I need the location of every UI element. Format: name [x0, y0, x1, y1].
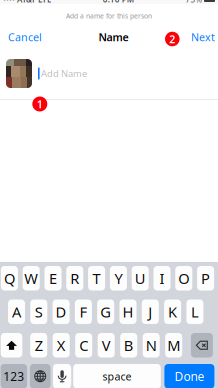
button[interactable]: V: [98, 333, 115, 357]
button[interactable]: H: [119, 299, 136, 324]
staticText: O: [178, 268, 189, 288]
staticText: 2: [169, 32, 175, 46]
button[interactable]: Z: [30, 333, 47, 357]
button[interactable]: J: [142, 299, 159, 324]
button[interactable]: P: [197, 266, 214, 290]
staticText: C: [79, 335, 88, 355]
staticText: Add a name for this person: [66, 12, 152, 20]
staticText: Name: [98, 30, 128, 44]
button[interactable]: G: [97, 299, 114, 324]
staticText: B: [124, 335, 134, 355]
button[interactable]: space: [73, 364, 161, 388]
staticText: S: [35, 302, 43, 321]
staticText: F: [79, 302, 87, 321]
button[interactable]: Delete: [191, 333, 213, 357]
staticText: M: [167, 335, 180, 355]
button[interactable]: C: [75, 333, 92, 357]
staticText: 123: [3, 368, 24, 384]
button[interactable]: S: [30, 299, 47, 324]
staticText: Done: [174, 368, 204, 384]
staticText: W: [24, 268, 38, 288]
button[interactable]: N: [143, 333, 160, 357]
staticText: Y: [114, 268, 122, 288]
staticText: space: [102, 369, 131, 383]
button[interactable]: T: [88, 266, 105, 290]
staticText: D: [56, 302, 67, 321]
staticText: N: [146, 335, 157, 355]
staticText: P: [201, 268, 210, 288]
staticText: •••• AT&T LTE: [3, 0, 51, 5]
staticText: J: [148, 302, 152, 321]
button[interactable]: X: [53, 333, 70, 357]
button[interactable]: W: [23, 266, 40, 290]
staticText: Q: [4, 268, 15, 288]
button[interactable]: Y: [110, 266, 127, 290]
staticText: T: [93, 268, 101, 288]
button[interactable]: A: [8, 299, 25, 324]
button[interactable]: E: [44, 266, 61, 290]
button[interactable]: F: [75, 299, 92, 324]
button[interactable]: O: [175, 266, 192, 290]
staticText: Next: [191, 30, 215, 44]
staticText: H: [122, 302, 133, 321]
staticText: 73%: [185, 0, 202, 5]
button[interactable]: I: [153, 266, 170, 290]
staticText: 6:16 PM: [103, 0, 134, 5]
button[interactable]: Q: [1, 266, 18, 290]
button[interactable]: L: [186, 299, 203, 324]
button[interactable]: D: [53, 299, 70, 324]
staticText: V: [102, 335, 111, 355]
staticText: Z: [35, 335, 43, 355]
staticText: K: [168, 302, 177, 321]
staticText: E: [49, 268, 57, 288]
staticText: Cancel: [8, 30, 42, 44]
button[interactable]: R: [66, 266, 83, 290]
staticText: R: [70, 268, 79, 288]
staticText: 1: [37, 97, 43, 111]
button[interactable]: Cancel: [0, 25, 42, 49]
staticText: G: [100, 302, 111, 321]
staticText: I: [159, 268, 164, 288]
staticText: X: [57, 335, 66, 355]
button[interactable]: K: [164, 299, 181, 324]
button[interactable]: Done: [164, 364, 214, 388]
button[interactable]: Dictation: [53, 364, 71, 388]
button[interactable]: B: [120, 333, 137, 357]
staticText: Add Name: [41, 67, 87, 80]
button[interactable]: 123: [1, 364, 27, 388]
button[interactable]: Next: [191, 25, 218, 49]
button[interactable]: Shift: [1, 333, 22, 357]
staticText: L: [191, 302, 199, 321]
button[interactable]: M: [165, 333, 182, 357]
staticText: U: [135, 268, 146, 288]
button[interactable]: U: [132, 266, 149, 290]
button[interactable]: Next keyboard: [30, 364, 50, 388]
staticText: A: [12, 302, 21, 321]
